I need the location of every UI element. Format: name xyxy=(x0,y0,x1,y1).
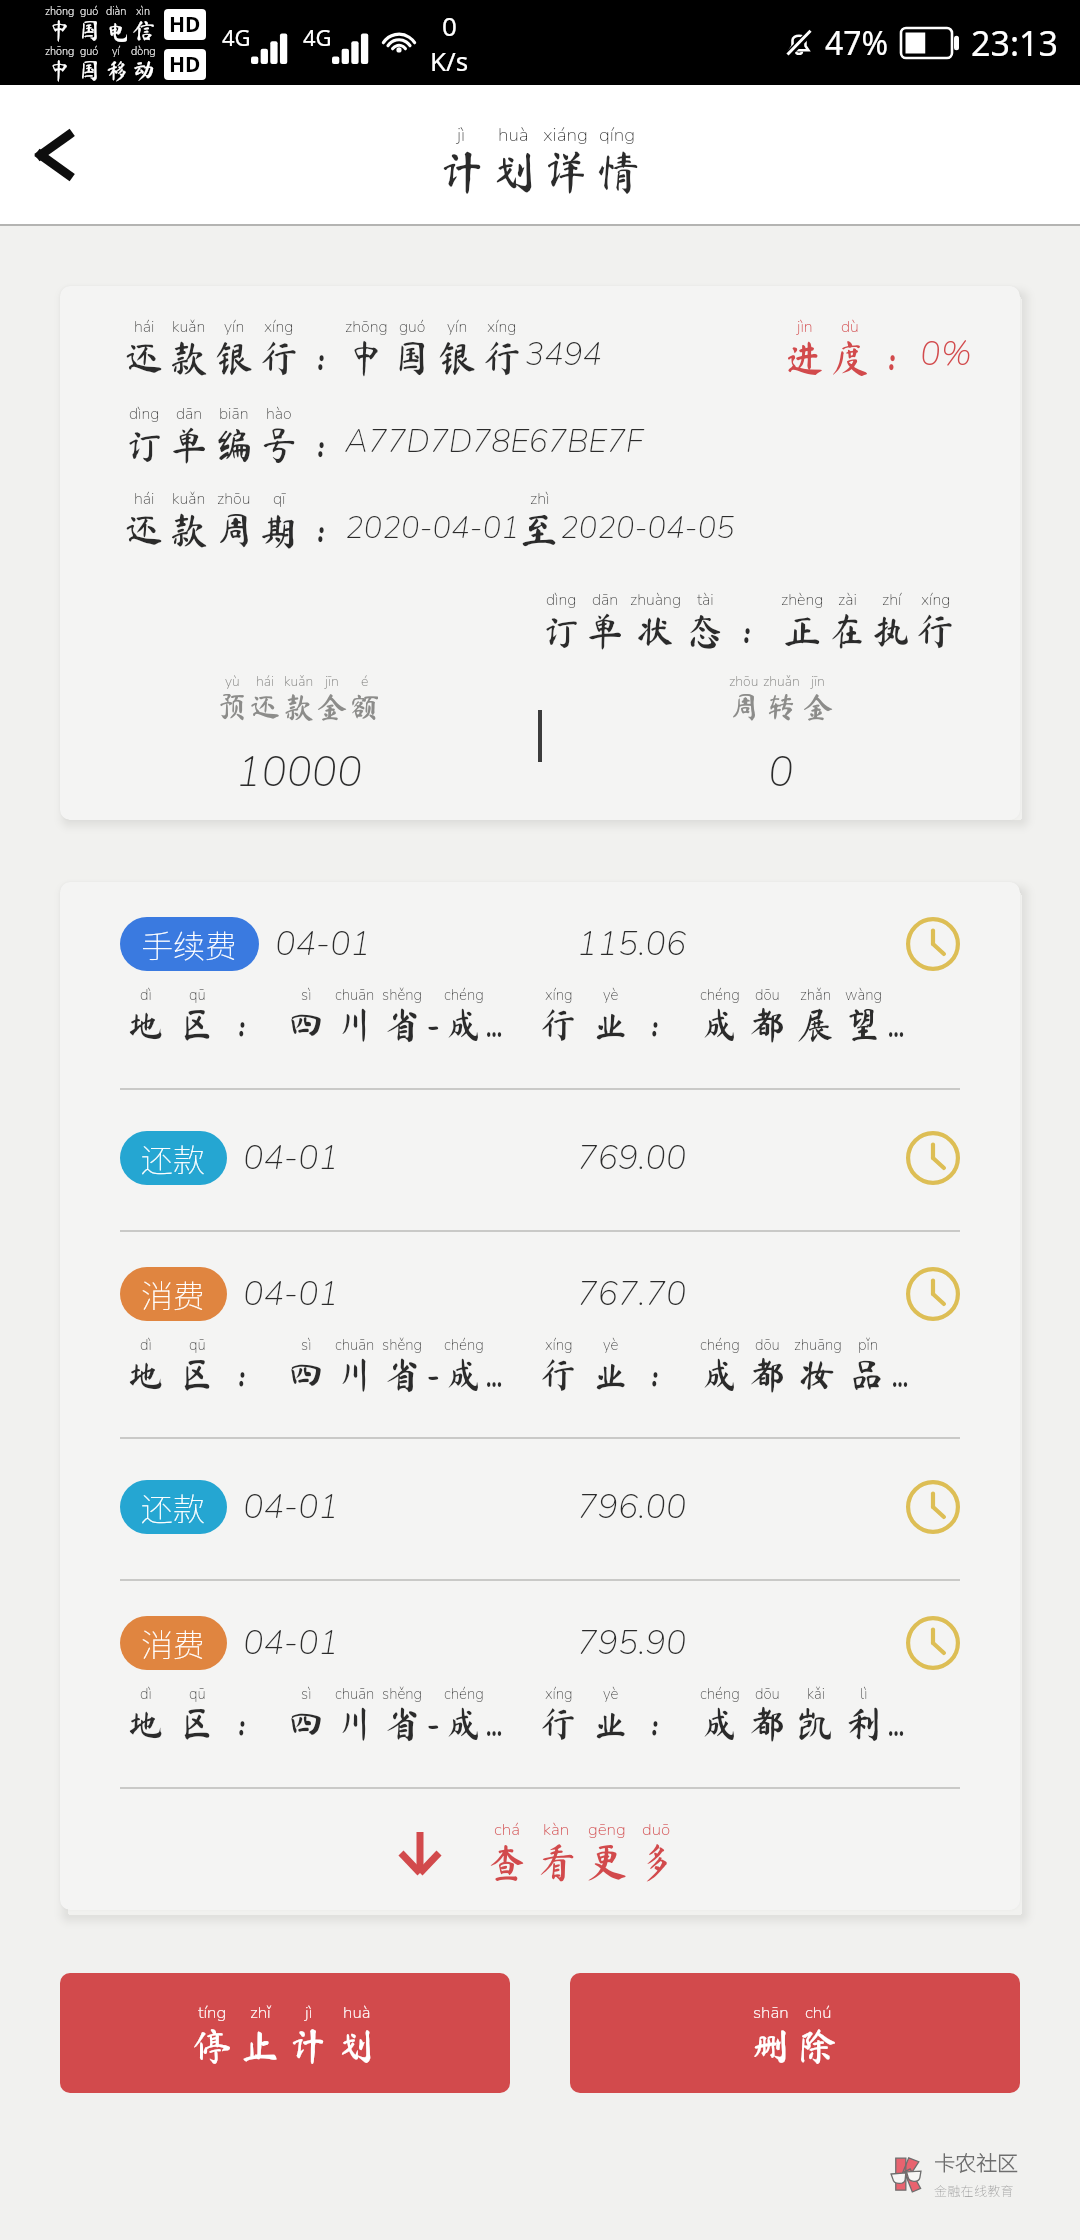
button[interactable]: 还款 xyxy=(60,1090,1020,1230)
staticText: - xyxy=(427,1356,440,1392)
staticText: chéng xyxy=(700,985,740,1005)
button[interactable]: Back xyxy=(12,117,88,193)
staticText: hái xyxy=(134,488,155,510)
staticText: chuān xyxy=(335,985,375,1005)
staticText: 成 xyxy=(701,1006,738,1042)
staticText: 区 xyxy=(179,1006,216,1042)
staticText: 周 xyxy=(215,511,254,549)
staticText: qíng xyxy=(599,122,636,148)
staticText: 04-01 xyxy=(243,1620,339,1666)
staticText: 769.00 xyxy=(577,1135,687,1181)
staticText: ： xyxy=(637,1006,674,1042)
staticText: - xyxy=(427,1705,440,1741)
staticText: 移 xyxy=(105,59,128,82)
staticText: dōu xyxy=(755,1684,780,1704)
staticText: 银 xyxy=(215,339,254,377)
staticText: 成 xyxy=(445,1356,482,1392)
staticText: jì xyxy=(457,122,466,148)
staticText: zhōu xyxy=(217,488,251,510)
staticText: dān xyxy=(176,403,203,425)
staticText: dìng xyxy=(546,589,577,611)
staticText: zhǐ xyxy=(250,2001,271,2024)
staticText: 成 xyxy=(445,1006,482,1042)
staticText: ： xyxy=(302,426,341,464)
staticText: chú xyxy=(805,2001,832,2024)
staticText: sì xyxy=(301,1335,312,1355)
staticText: 行 xyxy=(916,612,955,650)
staticText: 都 xyxy=(749,1006,786,1042)
staticText: chéng xyxy=(700,1684,740,1704)
staticText: zhǎn xyxy=(800,985,832,1005)
staticText: 凯 xyxy=(797,1705,834,1741)
staticText: 金 xyxy=(317,692,347,722)
staticText: 国 xyxy=(393,339,432,377)
staticText: ： xyxy=(637,1705,674,1741)
staticText: 妆 xyxy=(799,1356,836,1392)
staticText: ： xyxy=(224,1705,261,1741)
staticText: dòng xyxy=(131,44,156,59)
staticText: zhì xyxy=(530,488,550,510)
button[interactable]: shān xyxy=(570,1973,1020,2093)
staticText: … xyxy=(892,1362,909,1392)
staticText: 款 xyxy=(170,339,209,377)
staticText: 行 xyxy=(540,1356,577,1392)
staticText: huà xyxy=(343,2001,371,2024)
staticText: xíng xyxy=(545,985,573,1005)
button[interactable]: 消费 xyxy=(60,1581,1020,1787)
button[interactable]: 手续费 xyxy=(60,882,1020,1088)
staticText: ： xyxy=(873,339,912,377)
staticText: 省 xyxy=(384,1356,421,1392)
button[interactable]: tíng xyxy=(60,1973,510,2093)
staticText: lì xyxy=(860,1684,868,1704)
staticText: 更 xyxy=(587,1842,627,1882)
staticText: 还款 xyxy=(141,1484,206,1530)
staticText: 多 xyxy=(637,1842,677,1882)
staticText: zhōng xyxy=(45,4,75,19)
staticText: guó xyxy=(80,4,99,19)
staticText: 消费 xyxy=(141,1620,206,1666)
staticText: shěng xyxy=(382,1335,423,1355)
staticText: qū xyxy=(189,1684,206,1704)
staticText: 成 xyxy=(701,1705,738,1741)
staticText: 执 xyxy=(872,612,911,650)
staticText: 在 xyxy=(828,612,867,650)
staticText: 成 xyxy=(445,1705,482,1741)
staticText: 消费 xyxy=(141,1271,206,1317)
staticText: 单 xyxy=(586,612,625,650)
staticText: … xyxy=(486,1362,503,1392)
button[interactable]: chá xyxy=(60,1789,1020,1910)
staticText: 国 xyxy=(78,59,101,82)
staticText: 划 xyxy=(491,149,537,195)
staticText: shěng xyxy=(382,1684,423,1704)
staticText: 4G xyxy=(303,22,332,52)
staticText: ： xyxy=(224,1006,261,1042)
staticText: kàn xyxy=(543,1818,570,1841)
staticText: kuǎn xyxy=(172,316,206,338)
staticText: 地 xyxy=(127,1705,164,1741)
button[interactable]: 消费 xyxy=(60,1232,1020,1437)
staticText: zhí xyxy=(882,589,902,611)
staticText: dōu xyxy=(755,1335,780,1355)
staticText: huà xyxy=(498,122,529,148)
staticText: xíng xyxy=(545,1335,573,1355)
staticText: 正 xyxy=(783,612,822,650)
staticText: 手续费 xyxy=(141,921,238,967)
staticText: 04-01 xyxy=(275,921,371,967)
staticText: zhōu xyxy=(729,672,759,691)
staticText: sì xyxy=(301,1684,312,1704)
staticText: 川 xyxy=(336,1006,373,1042)
staticText: 信 xyxy=(132,19,155,42)
staticText: guó xyxy=(80,44,99,59)
staticText: 看 xyxy=(537,1842,577,1882)
staticText: 行 xyxy=(483,339,522,377)
button[interactable]: 还款 xyxy=(60,1439,1020,1579)
other: Pending xyxy=(906,917,960,971)
staticText: 795.90 xyxy=(577,1620,687,1666)
staticText: 编 xyxy=(215,426,254,464)
staticText: … xyxy=(888,1711,905,1741)
staticText: 2020-04-01 xyxy=(345,507,520,549)
staticText: é xyxy=(361,672,369,691)
staticText: 区 xyxy=(179,1356,216,1392)
staticText: hào xyxy=(266,403,292,425)
staticText: 国 xyxy=(78,19,101,42)
